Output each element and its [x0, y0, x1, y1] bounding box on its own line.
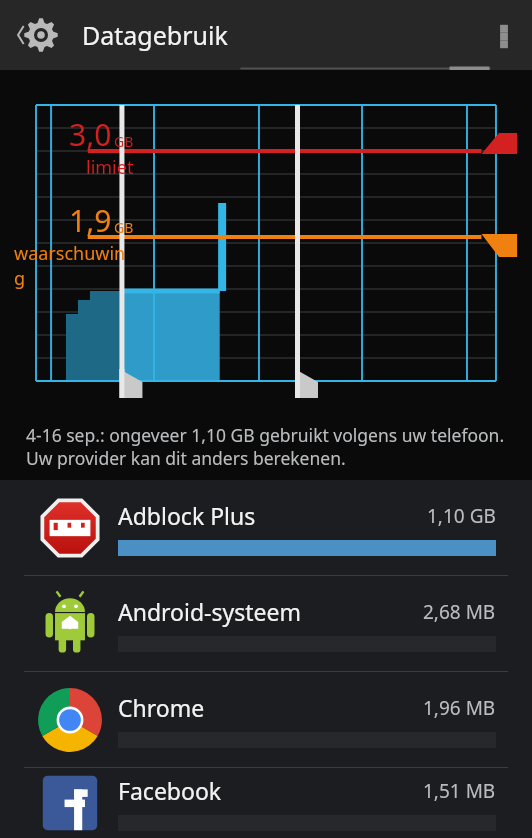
staticText: 3,0	[69, 114, 112, 155]
staticText: 1,51 MB	[423, 778, 496, 804]
staticText: GB	[114, 218, 134, 237]
staticText: Facebook	[118, 775, 222, 806]
button[interactable]: Up	[10, 4, 72, 66]
staticText: Datagebruik	[82, 18, 228, 52]
staticText: 1,9	[69, 200, 112, 241]
staticText: 1,96 MB	[423, 695, 496, 721]
button[interactable]: Facebook	[0, 768, 532, 838]
staticText: GB	[114, 132, 134, 151]
button[interactable]: Adblock Plus	[0, 480, 532, 575]
staticText: Android-systeem	[118, 596, 302, 627]
button[interactable]: More options	[476, 0, 532, 70]
staticText: 2,68 MB	[423, 599, 496, 625]
staticText: limiet	[86, 155, 134, 180]
button[interactable]: Android-systeem	[0, 576, 532, 671]
button[interactable]: Chrome	[0, 672, 532, 767]
staticText: Adblock Plus	[118, 500, 256, 531]
staticText: Chrome	[118, 692, 205, 723]
staticText: 4-16 sep.: ongeveer 1,10 GB gebruikt vol…	[26, 423, 508, 470]
staticText: 1,10 GB	[427, 503, 496, 529]
staticText: waarschuwing	[14, 241, 134, 291]
